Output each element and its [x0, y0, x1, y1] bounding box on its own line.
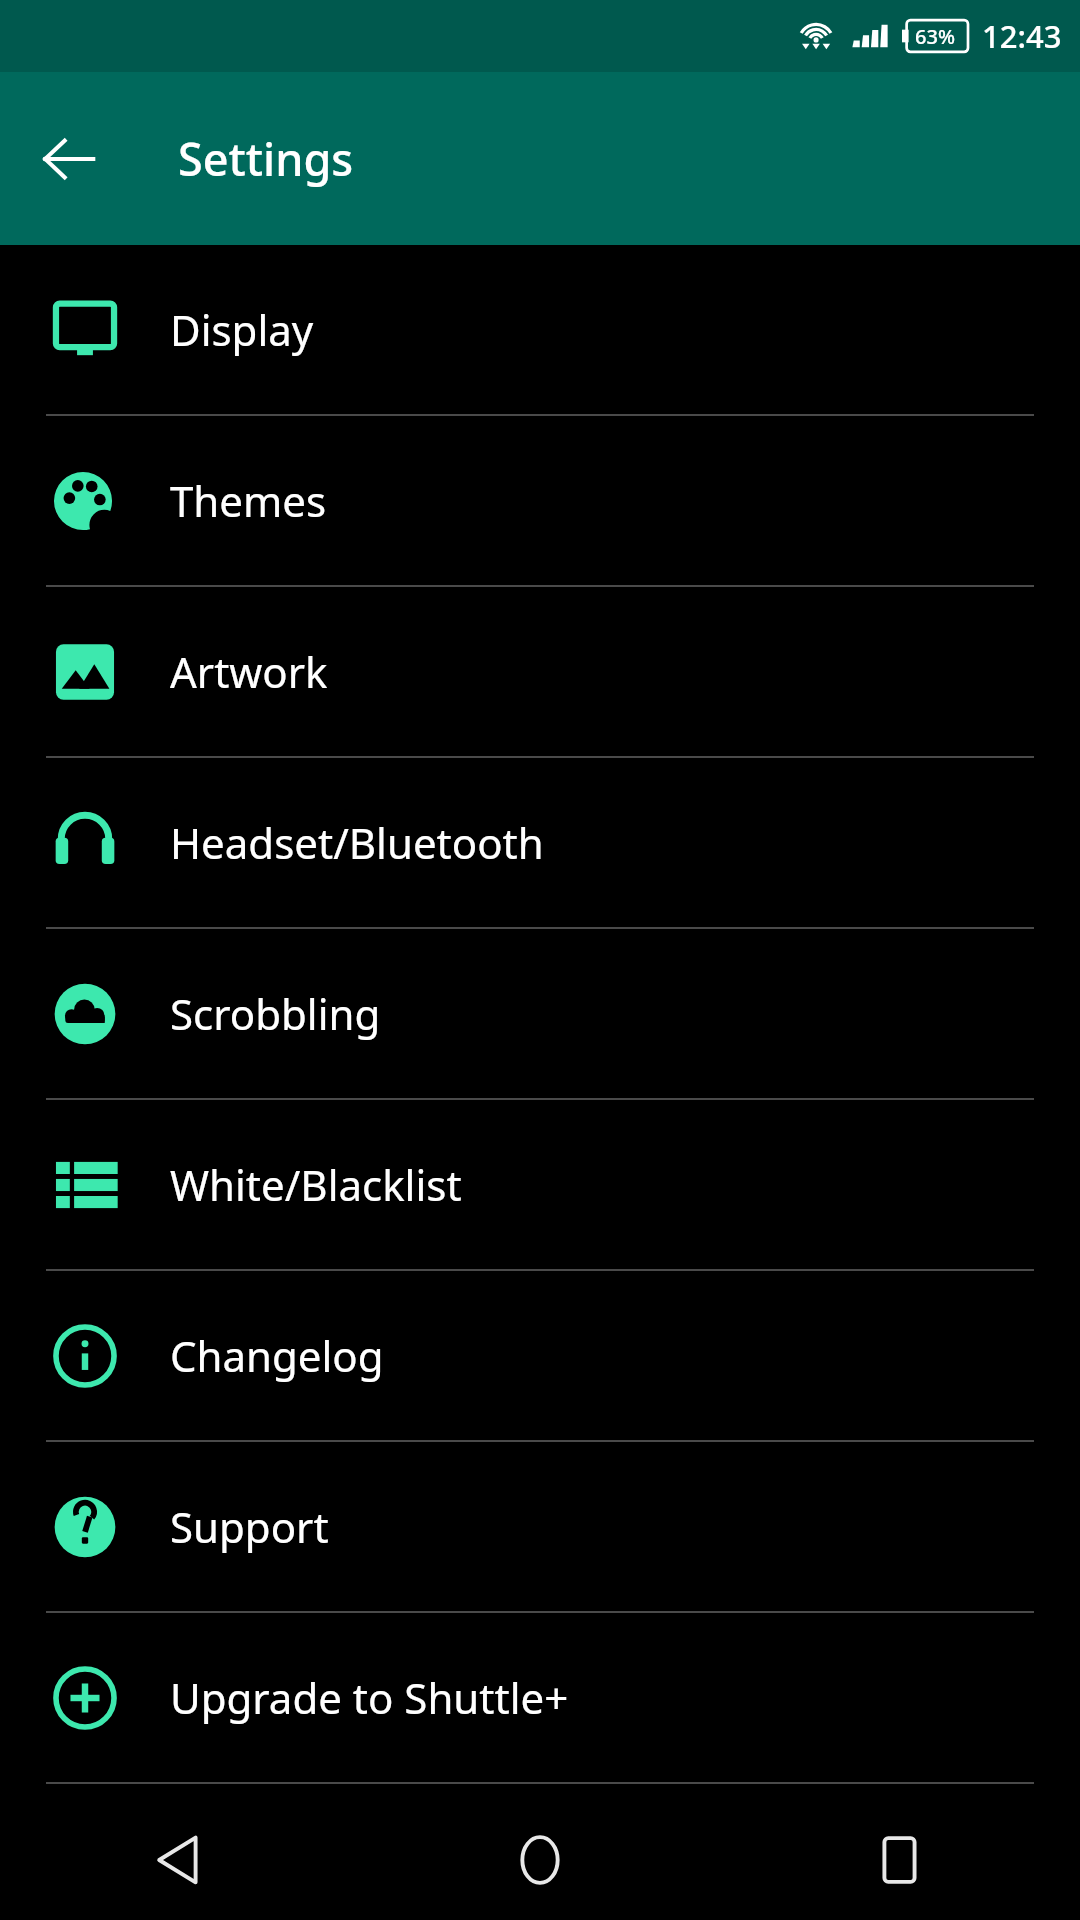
staticText: Support [170, 1498, 329, 1555]
staticText: Upgrade to Shuttle+ [170, 1669, 569, 1726]
staticText: Scrobbling [170, 985, 381, 1042]
staticText: Themes [170, 472, 327, 529]
button[interactable]: Changelog [0, 1271, 1080, 1442]
button[interactable]: White/Blacklist [0, 1100, 1080, 1271]
button[interactable]: Scrobbling [0, 929, 1080, 1100]
staticText: Changelog [170, 1327, 384, 1384]
button[interactable]: Upgrade to Shuttle+ [0, 1613, 1080, 1784]
button[interactable]: Support [0, 1442, 1080, 1613]
staticText: 12:43 [982, 15, 1062, 57]
button[interactable]: Back [26, 116, 112, 202]
button[interactable]: Artwork [0, 587, 1080, 758]
staticText: Settings [178, 128, 354, 189]
button[interactable]: Recent apps [720, 1800, 1080, 1920]
staticText: Display [170, 301, 314, 358]
staticText: Artwork [170, 643, 328, 700]
button[interactable]: Display [0, 245, 1080, 416]
button[interactable]: Headset/Bluetooth [0, 758, 1080, 929]
button[interactable]: Themes [0, 416, 1080, 587]
button[interactable]: Back [0, 1800, 360, 1920]
staticText: White/Blacklist [170, 1156, 462, 1213]
staticText: 63% [915, 23, 955, 50]
staticText: Headset/Bluetooth [170, 814, 544, 871]
button[interactable]: Home [360, 1800, 720, 1920]
